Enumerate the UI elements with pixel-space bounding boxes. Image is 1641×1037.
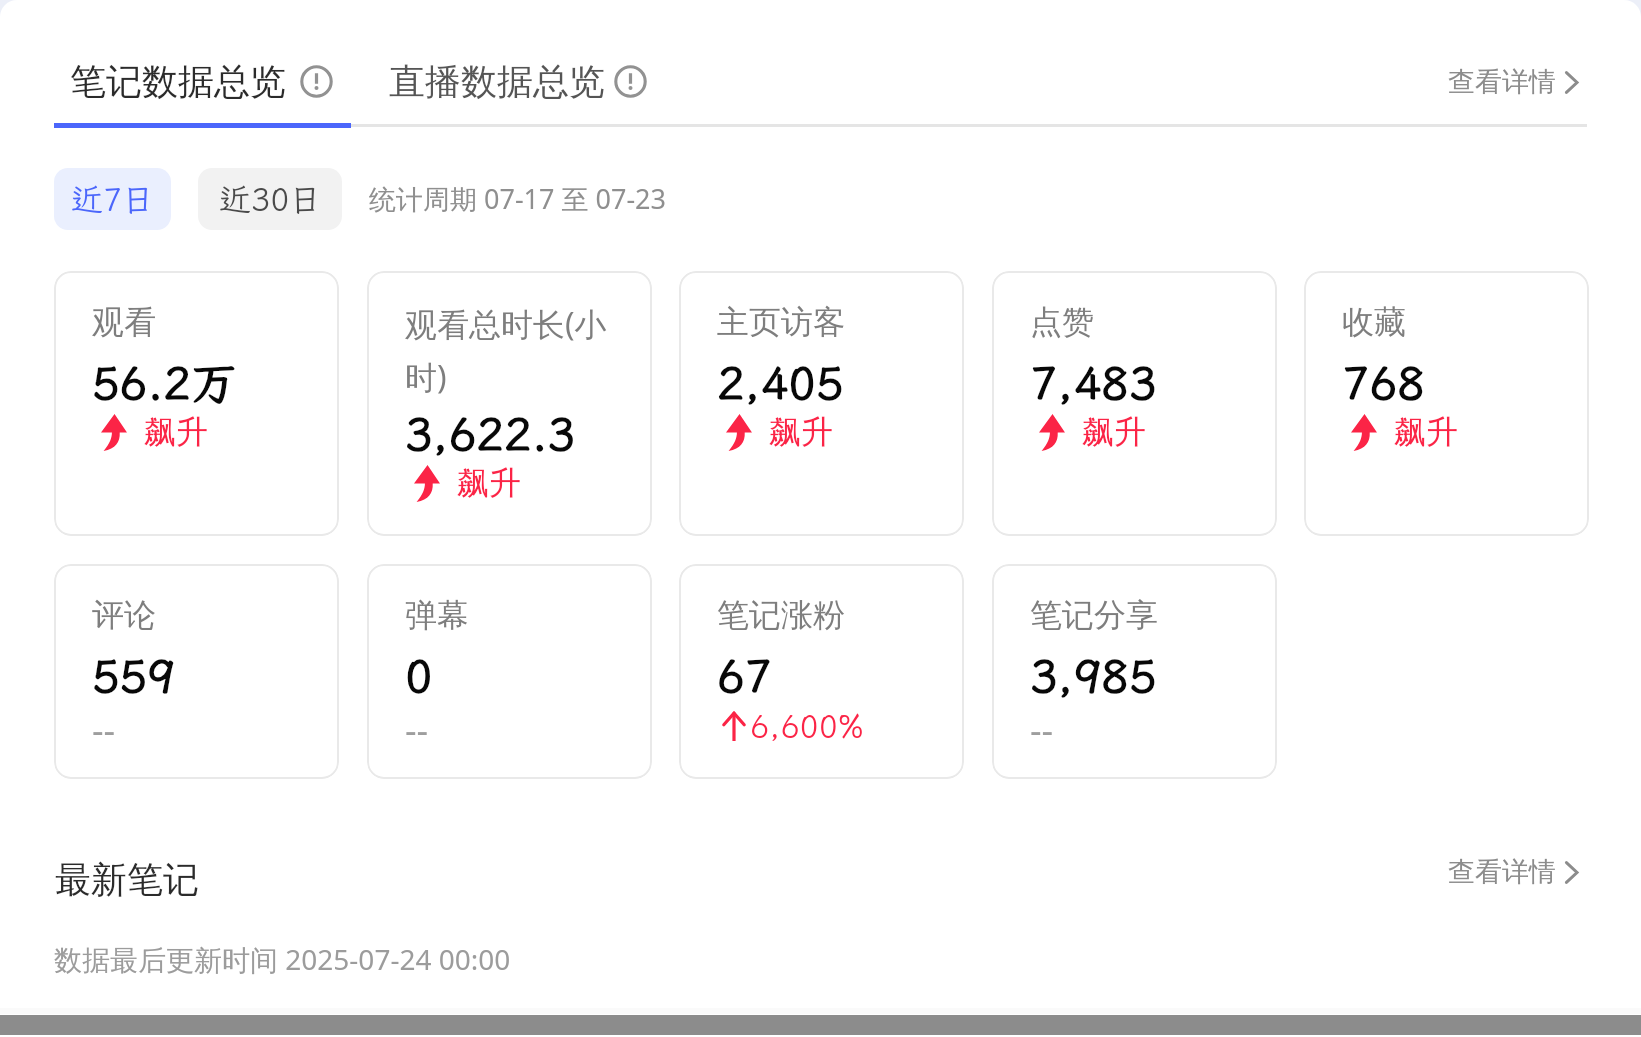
staticText: 6,600%: [750, 705, 864, 747]
staticText: 点赞: [1030, 302, 1262, 342]
button[interactable]: 查看详情: [1442, 849, 1589, 895]
staticText: 飙升: [457, 463, 521, 503]
staticText: 56.2万: [92, 352, 237, 413]
button[interactable]: 查看详情: [1442, 59, 1589, 105]
staticText: 笔记涨粉: [717, 595, 949, 635]
staticText: 数据最后更新时间 2025-07-24 00:00: [54, 940, 511, 978]
other: 说明: [300, 65, 333, 98]
button[interactable]: 主页访客: [679, 271, 964, 536]
staticText: 直播数据总览: [389, 59, 605, 104]
button[interactable]: 评论: [54, 564, 339, 779]
staticText: --: [405, 705, 429, 754]
button[interactable]: 点赞: [992, 271, 1277, 536]
staticText: 飙升: [1394, 412, 1458, 452]
button[interactable]: 收藏: [1304, 271, 1589, 536]
staticText: 3,622.3: [405, 403, 576, 464]
button[interactable]: 观看总时长(小时): [367, 271, 652, 536]
staticText: 笔记分享: [1030, 595, 1262, 635]
staticText: 飙升: [1082, 412, 1146, 452]
other: 说明: [614, 65, 647, 98]
staticText: 观看: [92, 302, 324, 342]
staticText: 最新笔记: [55, 857, 199, 902]
staticText: 统计周期 07-17 至 07-23: [369, 180, 666, 217]
staticText: 3,985: [1030, 645, 1157, 706]
staticText: 主页访客: [717, 302, 949, 342]
staticText: 7,483: [1030, 352, 1157, 413]
staticText: 飙升: [144, 412, 208, 452]
staticText: 收藏: [1342, 302, 1574, 342]
button[interactable]: 弹幕: [367, 564, 652, 779]
staticText: 近30日: [219, 178, 322, 220]
staticText: 2,405: [717, 352, 844, 413]
staticText: 评论: [92, 595, 324, 635]
staticText: 559: [92, 645, 175, 706]
button[interactable]: 近30日: [198, 168, 342, 230]
button[interactable]: 观看: [54, 271, 339, 536]
staticText: 0: [405, 645, 433, 706]
button[interactable]: 笔记分享: [992, 564, 1277, 779]
staticText: 飙升: [769, 412, 833, 452]
staticText: 观看总时长(小时): [405, 302, 637, 399]
staticText: --: [1030, 705, 1054, 754]
button[interactable]: 笔记数据总览: [53, 50, 350, 112]
staticText: --: [92, 705, 116, 754]
staticText: 67: [717, 645, 773, 706]
staticText: 近7日: [71, 178, 155, 220]
staticText: 查看详情: [1448, 855, 1556, 889]
staticText: 弹幕: [405, 595, 637, 635]
staticText: 768: [1342, 352, 1425, 413]
staticText: 查看详情: [1448, 65, 1556, 99]
staticText: 笔记数据总览: [70, 59, 286, 104]
button[interactable]: 直播数据总览: [369, 50, 666, 112]
button[interactable]: 近7日: [54, 168, 171, 230]
button[interactable]: 笔记涨粉: [679, 564, 964, 779]
